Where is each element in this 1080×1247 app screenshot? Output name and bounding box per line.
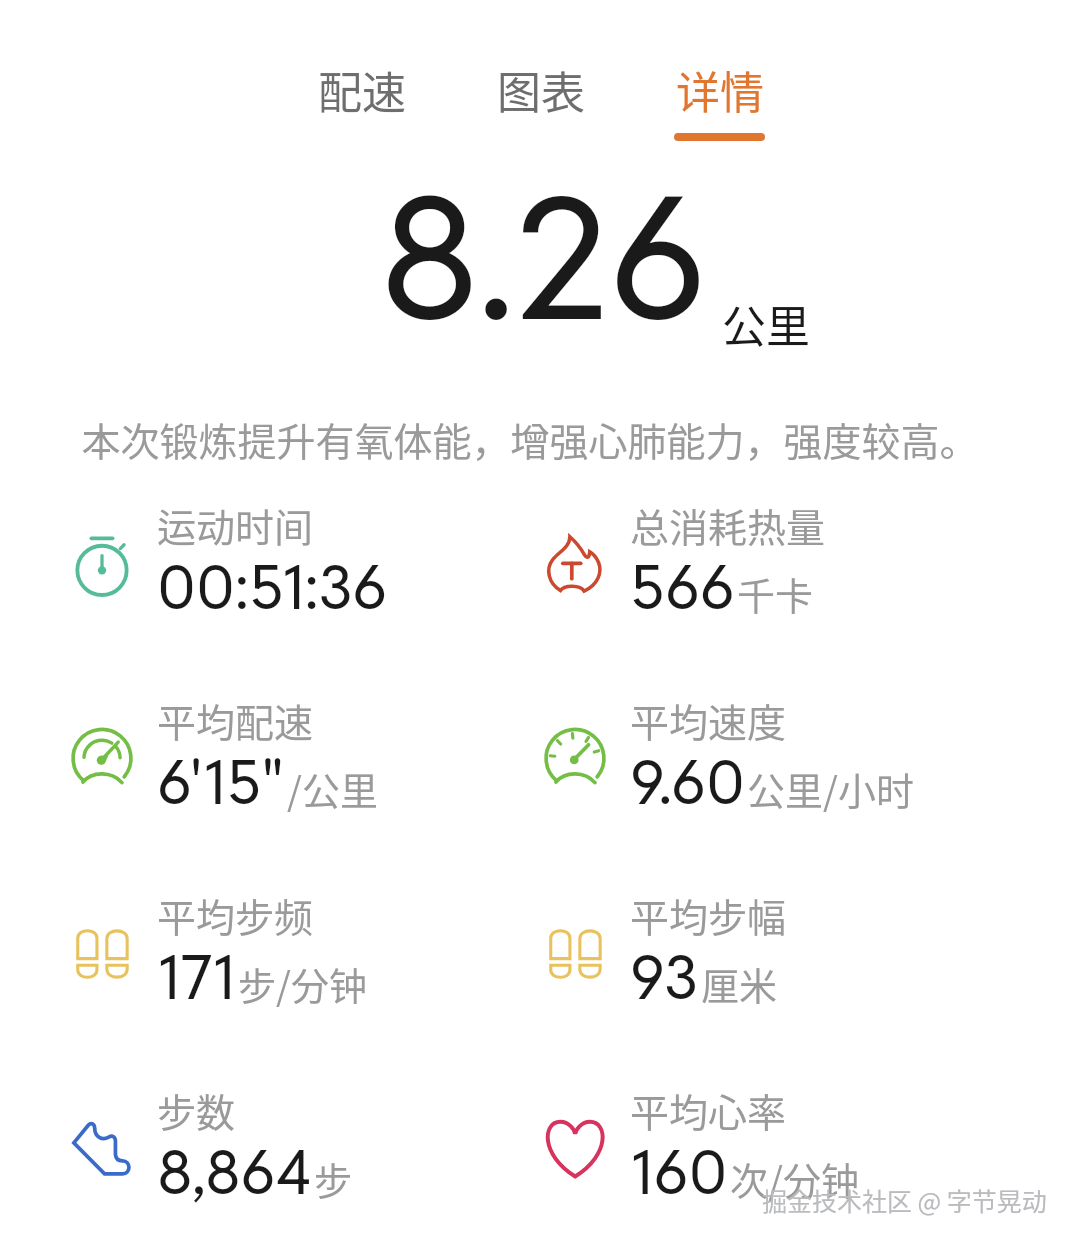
staticText: 步数 <box>157 1082 236 1138</box>
staticText: 公里/小时 <box>747 761 914 816</box>
other: Calories <box>543 531 607 595</box>
button[interactable]: Duration <box>70 497 301 575</box>
staticText: 详情 <box>676 58 764 122</box>
staticText: 掘金技术社区 @ 字节晃动 <box>762 1182 1047 1218</box>
staticText: 次/分钟 <box>730 1151 859 1206</box>
staticText: 厘米 <box>701 956 778 1011</box>
staticText: 9.60 <box>630 743 745 821</box>
button[interactable]: 图表 <box>491 58 590 141</box>
button[interactable]: Average pace <box>70 692 291 770</box>
staticText: 配速 <box>318 58 406 122</box>
button[interactable]: Heart rate <box>543 1082 772 1160</box>
staticText: 93 <box>630 938 699 1016</box>
staticText: 566 <box>630 548 735 626</box>
other: Duration <box>70 531 134 595</box>
staticText: 平均速度 <box>630 692 787 748</box>
staticText: 千卡 <box>737 566 814 621</box>
other: Stride length <box>543 921 607 985</box>
staticText: 平均心率 <box>630 1082 787 1138</box>
other: Heart rate <box>543 1116 607 1180</box>
other: Average speed <box>543 726 607 790</box>
staticText: 本次锻炼提升有氧体能，增强心肺能力，强度较高。 <box>0 411 1070 467</box>
button[interactable]: Steps <box>70 1082 266 1160</box>
staticText: 步 <box>314 1151 353 1206</box>
staticText: 平均步幅 <box>630 887 787 943</box>
staticText: 公里 <box>722 292 810 356</box>
staticText: 步/分钟 <box>238 956 367 1011</box>
staticText: 总消耗热量 <box>630 497 826 553</box>
staticText: 平均配速 <box>157 692 314 748</box>
other: Cadence <box>70 921 134 985</box>
button[interactable]: 详情 <box>670 58 769 141</box>
button[interactable]: 配速 <box>312 58 411 141</box>
button[interactable]: Calories <box>543 497 739 575</box>
other: Steps <box>70 1116 134 1180</box>
staticText: /公里 <box>287 761 378 816</box>
staticText: 160 <box>630 1133 728 1211</box>
staticText: 171 <box>157 938 236 1016</box>
button[interactable]: Cadence <box>70 887 280 965</box>
button[interactable]: Stride length <box>543 887 700 965</box>
staticText: 8,864 <box>157 1133 312 1211</box>
other: Average pace <box>70 726 134 790</box>
staticText: 平均步频 <box>157 887 314 943</box>
staticText: 运动时间 <box>157 497 314 553</box>
staticText: 6'15" <box>157 743 285 821</box>
staticText: 00:51:36 <box>157 548 388 626</box>
staticText: 8.26 <box>379 147 708 368</box>
button[interactable]: Average speed <box>543 692 827 770</box>
staticText: 图表 <box>497 58 585 122</box>
